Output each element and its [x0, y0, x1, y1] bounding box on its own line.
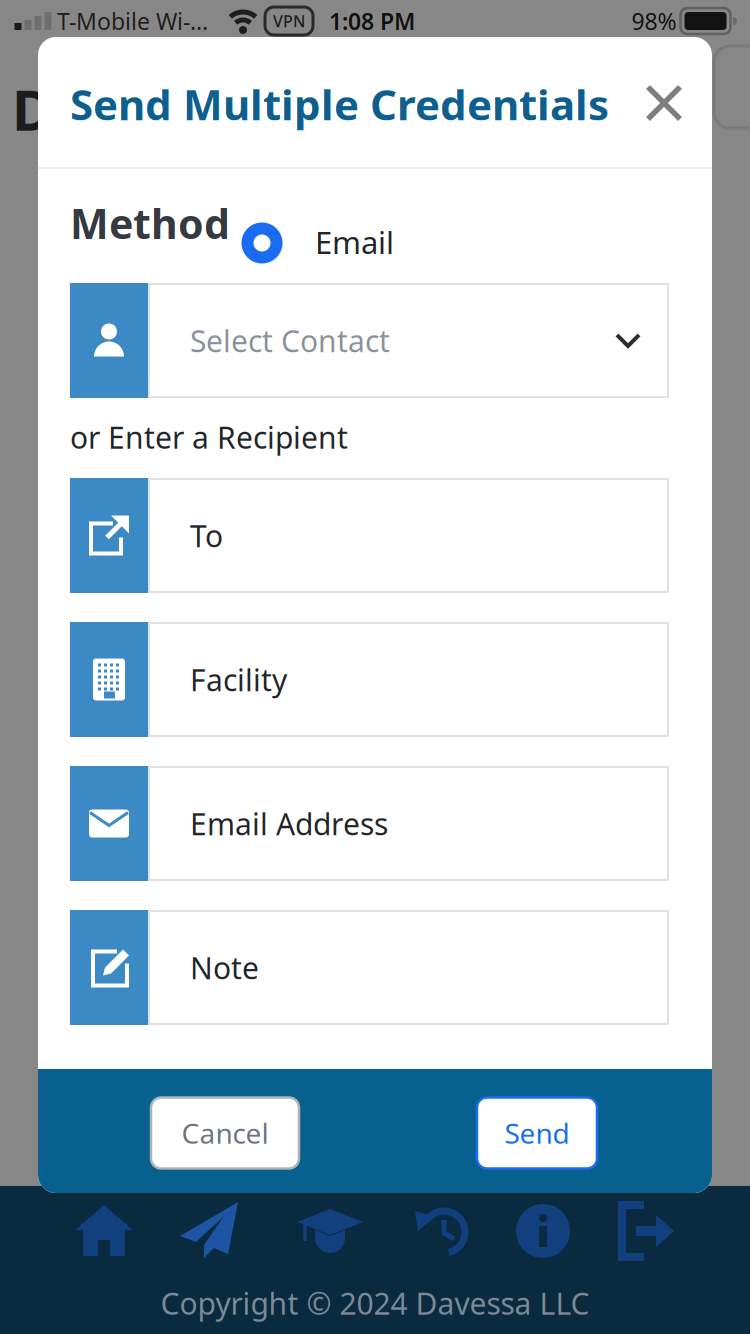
staticText: Facility	[190, 660, 287, 699]
staticText: Email Address	[190, 804, 388, 843]
staticText: 1:08 PM	[329, 6, 415, 36]
button[interactable]: Note	[38, 910, 669, 1025]
staticText: Note	[190, 948, 259, 987]
staticText: VPN	[273, 10, 305, 32]
button[interactable]: Close	[632, 71, 696, 135]
staticText: T-Mobile Wi-...	[57, 6, 208, 36]
staticText: Email	[315, 221, 394, 263]
button[interactable]: Email Address	[38, 766, 669, 881]
button[interactable]: Send	[180, 1202, 238, 1258]
button[interactable]: Select Contact	[38, 283, 669, 398]
button[interactable]: Info	[516, 1204, 570, 1258]
button[interactable]: Home	[77, 1205, 131, 1257]
staticText: D	[12, 72, 53, 146]
button[interactable]: Cancel	[151, 1097, 299, 1168]
staticText: Method	[70, 196, 230, 250]
button[interactable]: Facility	[38, 622, 669, 737]
staticText: To	[190, 516, 223, 555]
staticText: or Enter a Recipient	[70, 417, 348, 457]
staticText: Copyright © 2024 Davessa LLC	[160, 1283, 589, 1323]
staticText: Send	[504, 1114, 569, 1152]
staticText: Send Multiple Credentials	[70, 76, 609, 132]
button[interactable]: Training	[297, 1209, 363, 1253]
staticText: 98%	[631, 6, 676, 36]
button[interactable]: To	[38, 478, 669, 593]
button[interactable]: Send	[477, 1097, 597, 1168]
staticText: Cancel	[181, 1114, 268, 1152]
button[interactable]: Log out	[618, 1205, 674, 1257]
button[interactable]: Email method selected	[241, 222, 282, 263]
staticText: Select Contact	[190, 321, 390, 360]
button[interactable]: History	[415, 1203, 471, 1259]
